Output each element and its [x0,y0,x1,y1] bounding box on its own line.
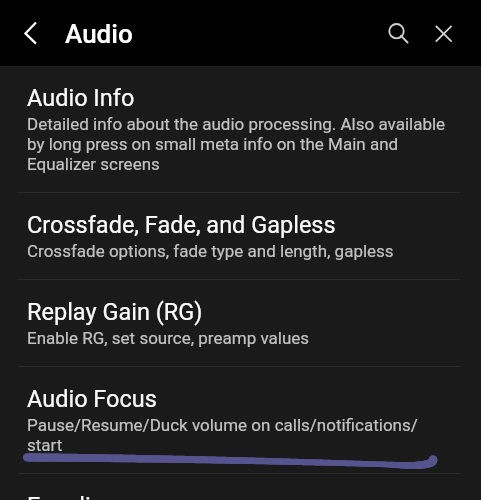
button[interactable]: Back [8,11,52,55]
staticText: Audio Focus [27,385,157,413]
button[interactable]: Replay Gain (RG) [0,280,481,366]
staticText: Audio [65,19,133,49]
staticText: Audio Info [27,84,135,112]
staticText: Equalizer [27,492,123,500]
button[interactable]: Equalizer [0,474,481,500]
button[interactable]: Close [422,11,466,55]
button[interactable]: Search [374,9,418,53]
staticText: Detailed info about the audio processing… [27,114,449,174]
staticText: Crossfade options, fade type and length,… [27,241,394,261]
staticText: Pause/Resume/Duck volume on calls/notifi… [27,415,449,455]
button[interactable]: Crossfade, Fade, and Gapless [0,193,481,279]
staticText: Enable RG, set source, preamp values [27,328,310,348]
staticText: Replay Gain (RG) [27,298,203,326]
button[interactable]: Audio Info [0,66,481,192]
staticText: Crossfade, Fade, and Gapless [27,211,336,239]
button[interactable]: Audio Focus [0,367,481,473]
